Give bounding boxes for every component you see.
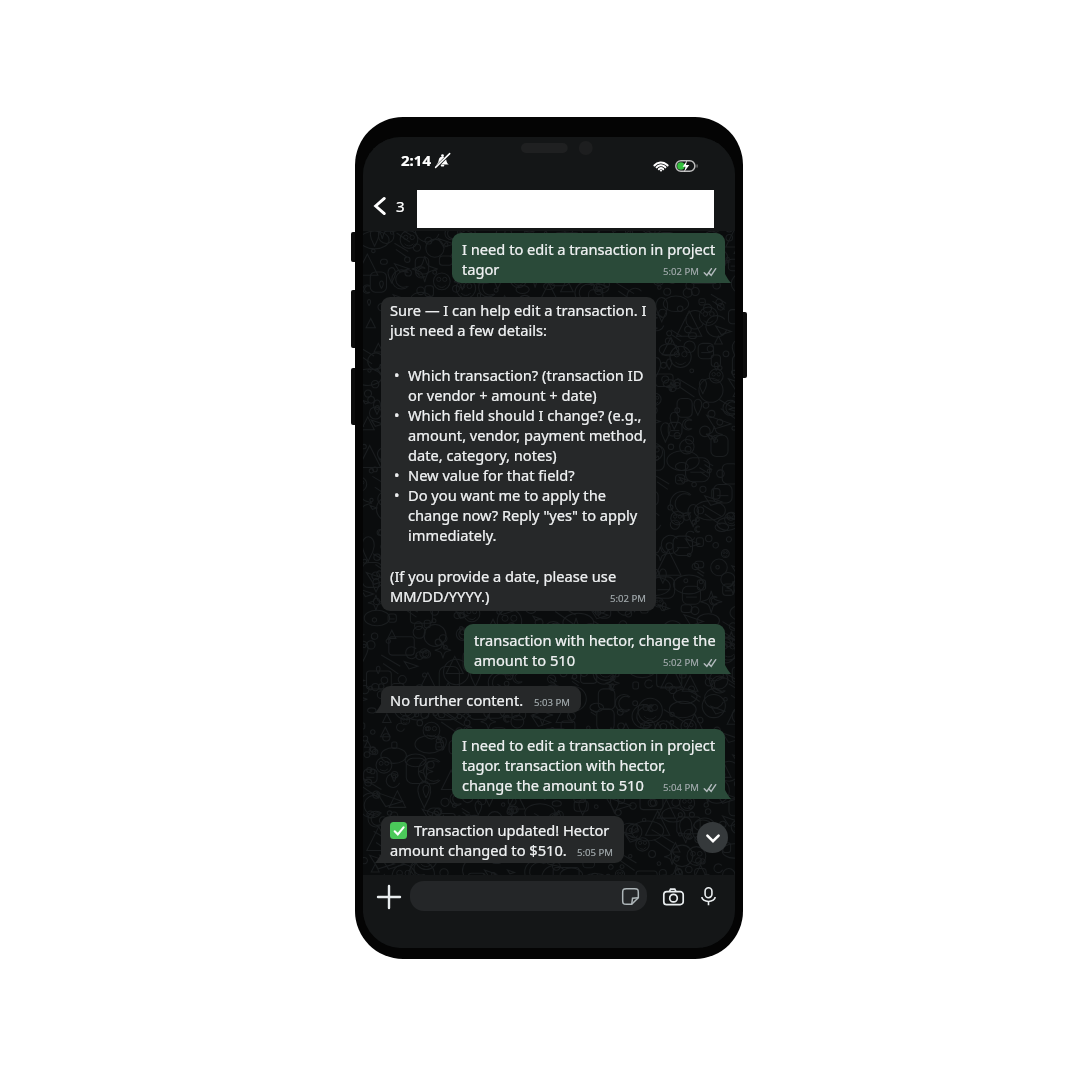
staticText: • [394, 485, 400, 505]
staticText: Transaction updated! Hector [414, 820, 610, 840]
staticText: 5:02 PM [663, 656, 700, 669]
staticText: • [394, 465, 400, 485]
staticText: MM/DD/YYYY.) [390, 586, 490, 606]
staticText: 5:02 PM [663, 265, 700, 278]
staticText: • [394, 405, 400, 425]
button[interactable] [410, 881, 647, 911]
button[interactable]: Sure — I can help edit a transaction. I [381, 297, 656, 611]
staticText: amount to 510 [474, 650, 576, 670]
staticText: 5:03 PM [534, 696, 571, 709]
staticText: Which field should I change? (e.g., [408, 405, 642, 425]
staticText: immediately. [408, 525, 497, 545]
staticText: (If you provide a date, please use [390, 566, 617, 586]
button[interactable]: I need to edit a transaction in project [452, 729, 725, 799]
staticText: 5:05 PM [577, 846, 614, 859]
staticText: date, category, notes) [408, 445, 557, 465]
staticText: 3 [396, 196, 405, 216]
staticText: 5:02 PM [610, 592, 647, 605]
staticText: amount changed to $510. [390, 840, 567, 860]
button[interactable]: Transaction updated! Hector [381, 816, 624, 863]
staticText: change now? Reply "yes" to apply [408, 505, 638, 525]
staticText: just need a few details: [390, 320, 547, 340]
staticText: Sure — I can help edit a transaction. I [390, 300, 647, 320]
staticText: transaction with hector, change the [474, 630, 716, 650]
staticText: 2:14 [401, 150, 431, 170]
button[interactable]: Voice message [695, 883, 721, 909]
staticText: I need to edit a transaction in project [462, 735, 716, 755]
staticText: New value for that field? [408, 465, 575, 485]
staticText: 5:04 PM [663, 781, 700, 794]
button[interactable]: I need to edit a transaction in project [452, 233, 725, 283]
staticText: • [394, 365, 400, 385]
button[interactable]: Camera [659, 883, 687, 911]
staticText: No further content. [390, 690, 524, 710]
staticText: tagor. transaction with hector, [462, 755, 666, 775]
staticText: tagor [462, 259, 500, 279]
button[interactable]: Attach [374, 882, 404, 912]
staticText: change the amount to 510 [462, 775, 644, 795]
staticText: amount, vendor, payment method, [408, 425, 647, 445]
staticText: Do you want me to apply the [408, 485, 606, 505]
button[interactable]: Scroll to bottom [697, 822, 728, 853]
button[interactable]: Back [364, 190, 396, 222]
button[interactable]: transaction with hector, change the [464, 624, 725, 674]
staticText: I need to edit a transaction in project [462, 239, 716, 259]
button[interactable]: No further content. [381, 686, 581, 713]
staticText: or vendor + amount + date) [408, 385, 597, 405]
staticText: Which transaction? (transaction ID [408, 365, 644, 385]
